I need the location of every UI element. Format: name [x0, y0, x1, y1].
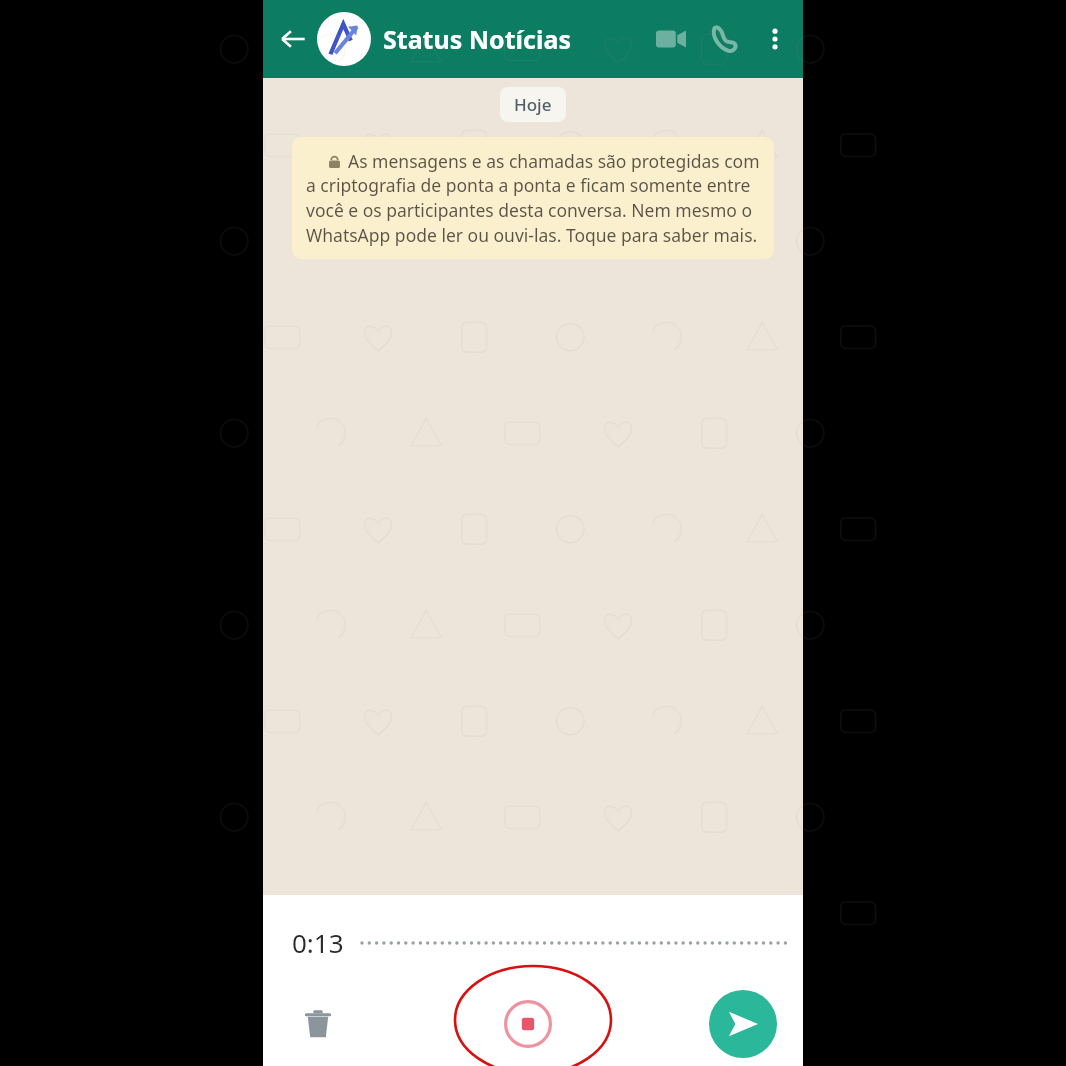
staticText: Hoje: [514, 93, 552, 116]
staticText: a criptografia de ponta a ponta e ficam …: [306, 173, 760, 247]
button[interactable]: Video call: [643, 11, 699, 67]
button[interactable]: Hoje: [500, 87, 566, 122]
button[interactable]: Status Notícias: [383, 22, 643, 56]
staticText: Status Notícias: [383, 22, 571, 56]
staticText: 0:13: [292, 925, 344, 960]
button[interactable]: Send: [709, 990, 777, 1058]
button[interactable]: Voice call: [699, 13, 751, 65]
button[interactable]: Stop recording: [489, 985, 567, 1063]
button[interactable]: As mensagens e as chamadas são protegida…: [292, 137, 774, 259]
button[interactable]: Delete recording: [289, 995, 347, 1053]
button[interactable]: Profile photo: [317, 12, 371, 66]
staticText: As mensagens e as chamadas são protegida…: [348, 149, 760, 173]
button[interactable]: Back: [271, 17, 315, 61]
button[interactable]: More options: [751, 15, 799, 63]
